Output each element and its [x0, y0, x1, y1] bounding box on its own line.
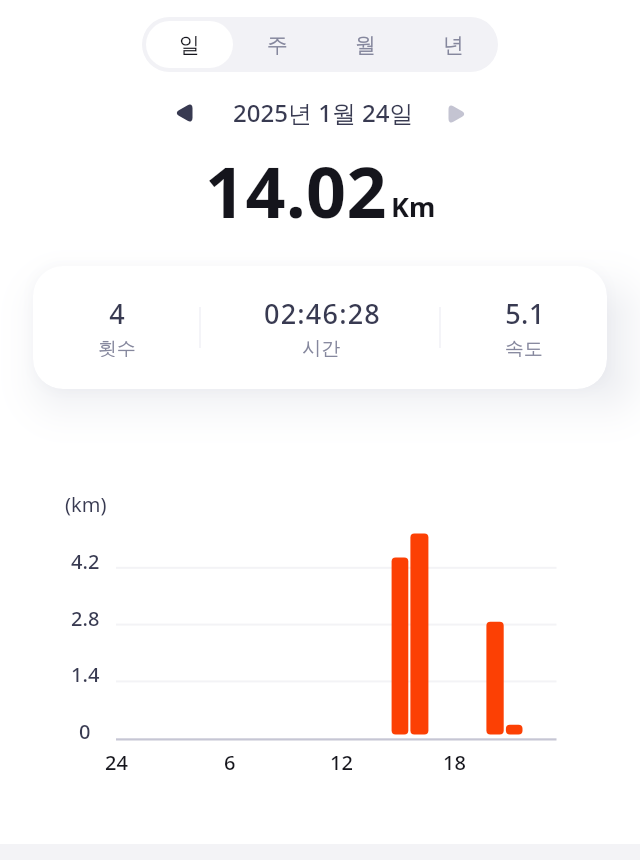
staticText: 월: [355, 32, 376, 58]
staticText: 02:46:28: [264, 295, 381, 332]
staticText: 4: [109, 295, 125, 332]
staticText: 12: [330, 749, 353, 776]
staticText: 2025년 1월 24일: [233, 96, 414, 129]
staticText: 24: [105, 749, 128, 776]
button[interactable]: 이전 날짜: [162, 91, 206, 135]
staticText: 일: [179, 32, 200, 58]
staticText: 년: [443, 32, 464, 58]
staticText: (km): [65, 491, 107, 518]
staticText: 속도: [505, 337, 543, 361]
staticText: 14.02: [205, 143, 387, 238]
button[interactable]: 주: [233, 17, 321, 72]
staticText: 횟수: [98, 337, 136, 361]
staticText: 시간: [302, 337, 340, 361]
staticText: 5.1: [505, 295, 545, 332]
staticText: 0: [79, 718, 91, 745]
staticText: 주: [267, 32, 288, 58]
button[interactable]: 월: [321, 17, 409, 72]
staticText: 4.2: [71, 548, 100, 575]
button[interactable]: 일: [145, 17, 233, 72]
button[interactable]: 다음 날짜: [435, 92, 479, 136]
staticText: 18: [443, 749, 466, 776]
button[interactable]: 년: [409, 17, 497, 72]
staticText: 1.4: [71, 661, 100, 688]
staticText: 2.8: [71, 605, 100, 632]
staticText: 6: [224, 749, 236, 776]
staticText: Km: [391, 188, 436, 225]
